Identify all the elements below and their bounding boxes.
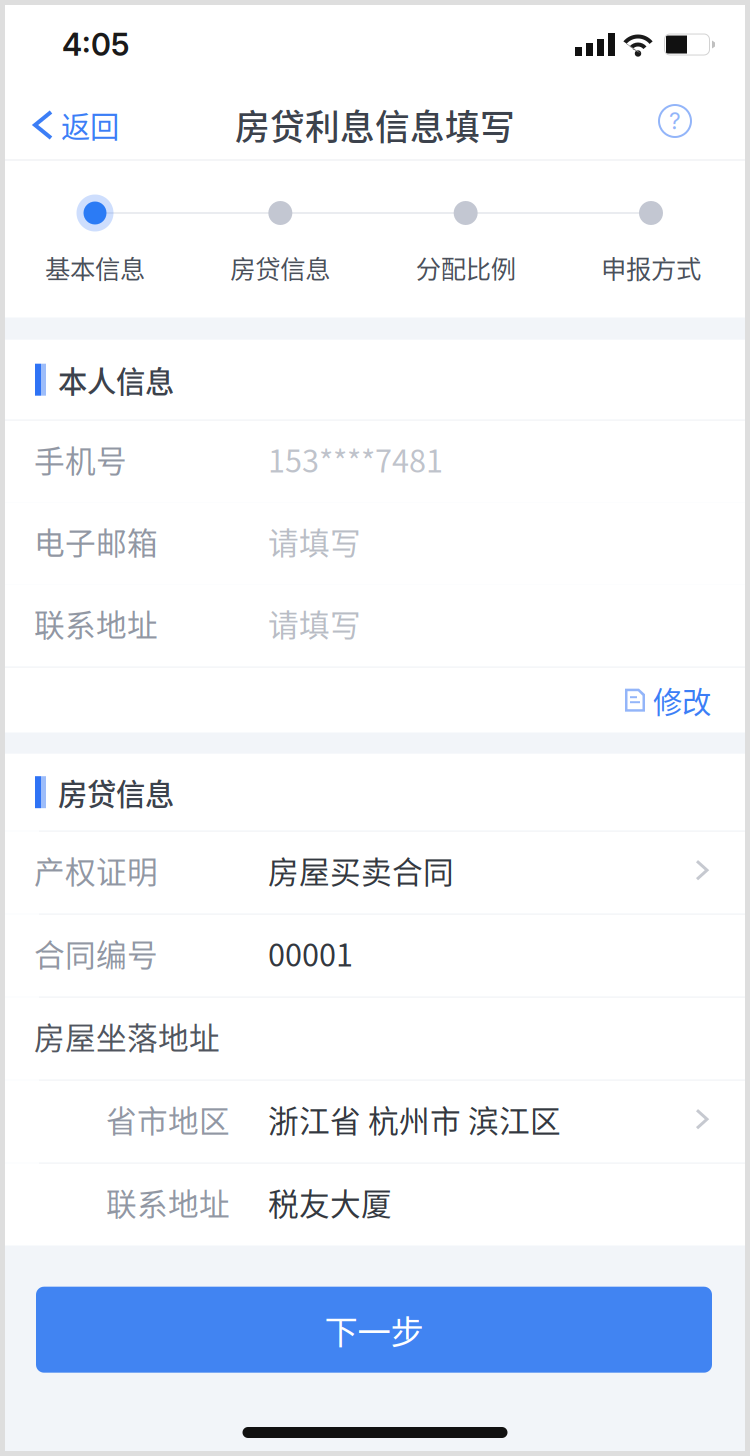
staticText: 产权证明	[34, 848, 158, 892]
button[interactable]: 手机号	[5, 421, 745, 503]
button[interactable]: 联系地址	[5, 585, 745, 667]
staticText: 00001	[268, 931, 353, 975]
button[interactable]: 省市地区	[5, 1081, 745, 1163]
staticText: 联系地址	[34, 601, 158, 645]
staticText: 手机号	[34, 437, 127, 481]
staticText: 返回	[61, 104, 119, 146]
staticText: 省市地区	[106, 1097, 230, 1141]
staticText: 请填写	[268, 601, 361, 645]
staticText: 下一步	[324, 1305, 423, 1354]
staticText: 浙江省 杭州市 滨江区	[268, 1097, 561, 1141]
button[interactable]: 修改	[625, 668, 745, 733]
staticText: 房贷信息	[58, 771, 174, 813]
button[interactable]: Help	[658, 91, 745, 159]
button[interactable]: 电子邮箱	[5, 503, 745, 585]
staticText: 合同编号	[34, 931, 158, 975]
staticText: 联系地址	[106, 1180, 230, 1224]
staticText: 房贷信息	[230, 249, 330, 286]
staticText: 本人信息	[58, 358, 174, 401]
button[interactable]: 合同编号	[5, 915, 745, 997]
staticText: 房屋买卖合同	[268, 848, 454, 892]
staticText: 153****7481	[268, 437, 443, 481]
button[interactable]: 返回	[5, 91, 135, 159]
staticText: 4:05	[62, 26, 129, 63]
staticText: ?	[669, 107, 681, 135]
button[interactable]: 联系地址	[5, 1164, 745, 1246]
staticText: 电子邮箱	[34, 519, 158, 563]
staticText: 申报方式	[601, 249, 701, 286]
staticText: 基本信息	[45, 249, 145, 286]
button[interactable]: 房屋坐落地址	[5, 998, 745, 1080]
staticText: 请填写	[268, 519, 361, 563]
staticText: 房贷利息信息填写	[235, 100, 515, 150]
staticText: 修改	[653, 679, 711, 721]
button[interactable]: 产权证明	[5, 832, 745, 914]
button[interactable]: 下一步	[5, 1287, 745, 1373]
staticText: 税友大厦	[268, 1180, 392, 1224]
staticText: 房屋坐落地址	[34, 1014, 220, 1058]
staticText: 分配比例	[416, 249, 516, 286]
